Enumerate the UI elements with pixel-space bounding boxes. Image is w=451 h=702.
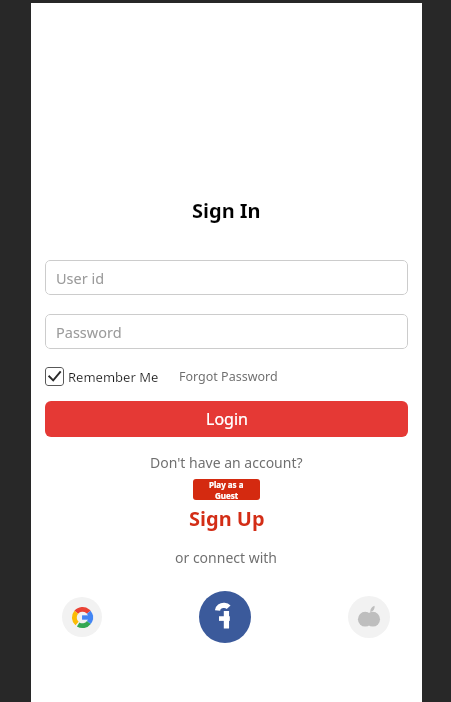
staticText: Remember Me	[68, 368, 159, 386]
staticText: User id	[56, 268, 105, 288]
button[interactable]: Forgot Password	[179, 368, 278, 385]
staticText: Sign Up	[189, 505, 265, 532]
button[interactable]: Sign in with Apple	[348, 596, 390, 638]
staticText: Sign In	[192, 197, 261, 224]
staticText: or connect with	[175, 548, 278, 567]
staticText: Login	[206, 408, 248, 430]
button[interactable]: Sign in with Google	[62, 597, 102, 637]
button[interactable]: Sign Up	[189, 505, 265, 532]
button[interactable]: Password	[45, 314, 408, 349]
button[interactable]: Remember Me	[45, 367, 159, 386]
staticText: Play as a	[209, 479, 244, 490]
button[interactable]: Play as a	[193, 479, 260, 500]
staticText: Guest	[215, 490, 239, 500]
staticText: Don't have an account?	[150, 453, 303, 472]
button[interactable]: Login	[45, 401, 408, 437]
button[interactable]: User id	[45, 260, 408, 295]
button[interactable]: Sign in with Facebook	[199, 591, 251, 643]
staticText: Password	[56, 322, 122, 342]
staticText: Forgot Password	[179, 368, 278, 385]
